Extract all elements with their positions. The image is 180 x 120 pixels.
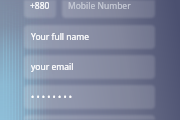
button[interactable]: Country code +880 [24,0,56,18]
staticText: +880 [30,0,50,12]
staticText: Mobile Number [68,0,131,12]
staticText: • • • • • • • • [31,91,73,103]
staticText: your email [31,61,74,73]
staticText: Your full name [31,31,90,43]
